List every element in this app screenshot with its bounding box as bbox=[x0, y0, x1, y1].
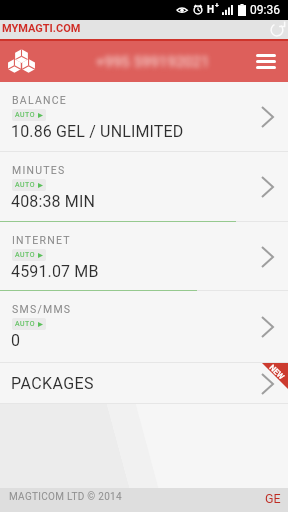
button[interactable]: Refresh bbox=[269, 22, 285, 38]
staticText: 09:36 bbox=[250, 3, 280, 17]
staticText: AUTO bbox=[15, 251, 35, 259]
staticText: MINUTES bbox=[12, 164, 66, 176]
staticText: MAGTICOM LTD © 2014 bbox=[9, 491, 122, 503]
button[interactable]: MINUTES bbox=[0, 152, 288, 222]
staticText: PACKAGES bbox=[11, 374, 94, 393]
button[interactable]: Menu bbox=[254, 49, 278, 73]
button[interactable]: SMS/MMS bbox=[0, 291, 288, 363]
staticText: AUTO bbox=[15, 320, 35, 328]
staticText: INTERNET bbox=[12, 234, 71, 246]
staticText: BALANCE bbox=[12, 94, 68, 106]
staticText: GE bbox=[265, 491, 281, 506]
staticText: NEW bbox=[267, 363, 287, 382]
button[interactable]: PACKAGES bbox=[0, 363, 288, 404]
staticText: AUTO bbox=[15, 111, 35, 119]
staticText: 10.86 GEL / UNLIMITED bbox=[11, 122, 184, 141]
button[interactable]: Magti logo bbox=[9, 49, 34, 73]
button[interactable]: BALANCE bbox=[0, 82, 288, 152]
staticText: SMS/MMS bbox=[12, 303, 72, 315]
staticText: 408:38 MIN bbox=[11, 192, 96, 211]
staticText: MYMAGTI.COM bbox=[2, 22, 81, 35]
staticText: 4591.07 MB bbox=[11, 262, 99, 281]
staticText: H bbox=[207, 4, 215, 16]
button[interactable]: INTERNET bbox=[0, 222, 288, 291]
staticText: AUTO bbox=[15, 181, 35, 189]
button[interactable]: GE bbox=[265, 491, 281, 506]
staticText: 0 bbox=[11, 331, 21, 350]
staticText: + bbox=[215, 2, 219, 10]
